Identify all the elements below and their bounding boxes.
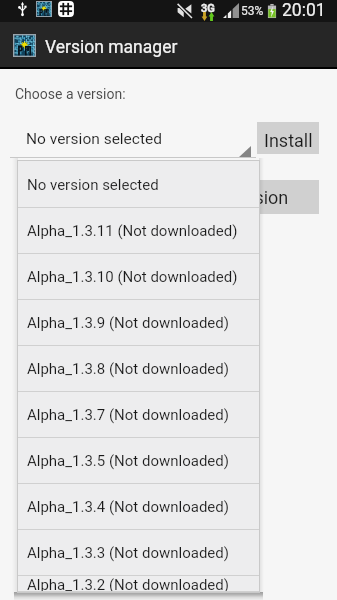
staticText: Alpha_1.3.2 (Not downloaded) bbox=[27, 576, 230, 592]
button[interactable]: Alpha_1.3.11 (Not downloaded) bbox=[18, 208, 259, 254]
button[interactable]: Alpha_1.3.3 (Not downloaded) bbox=[18, 530, 259, 576]
staticText: No version selected bbox=[27, 176, 159, 194]
staticText: Alpha_1.3.4 (Not downloaded) bbox=[27, 498, 230, 516]
staticText: Alpha_1.3.3 (Not downloaded) bbox=[27, 544, 230, 562]
staticText: No version selected bbox=[26, 130, 162, 148]
staticText: Install bbox=[264, 130, 313, 151]
staticText: Alpha_1.3.7 (Not downloaded) bbox=[27, 406, 230, 424]
staticText: Delete version bbox=[175, 187, 289, 208]
staticText: Version manager bbox=[45, 37, 178, 58]
staticText: Alpha_1.3.5 (Not downloaded) bbox=[27, 452, 230, 470]
button[interactable]: Alpha_1.3.8 (Not downloaded) bbox=[18, 346, 259, 392]
staticText: 53% bbox=[241, 4, 264, 18]
button[interactable]: No version selected bbox=[10, 113, 256, 158]
button[interactable]: Alpha_1.3.7 (Not downloaded) bbox=[18, 392, 259, 438]
button[interactable]: Alpha_1.3.10 (Not downloaded) bbox=[18, 254, 259, 300]
button[interactable]: Delete version bbox=[145, 180, 319, 214]
button[interactable]: Alpha_1.3.4 (Not downloaded) bbox=[18, 484, 259, 530]
staticText: Alpha_1.3.10 (Not downloaded) bbox=[27, 268, 238, 286]
button[interactable]: No version selected bbox=[18, 162, 259, 208]
button[interactable]: Alpha_1.3.5 (Not downloaded) bbox=[18, 438, 259, 484]
staticText: Alpha_1.3.9 (Not downloaded) bbox=[27, 314, 230, 332]
staticText: Choose a version: bbox=[15, 86, 126, 102]
button[interactable]: Alpha_1.3.9 (Not downloaded) bbox=[18, 300, 259, 346]
button[interactable]: Install bbox=[257, 122, 319, 154]
staticText: Alpha_1.3.11 (Not downloaded) bbox=[27, 222, 238, 240]
staticText: 3G bbox=[201, 2, 215, 15]
staticText: Alpha_1.3.8 (Not downloaded) bbox=[27, 360, 230, 378]
staticText: 20:01 bbox=[282, 0, 326, 21]
button[interactable]: Alpha_1.3.2 (Not downloaded) bbox=[18, 576, 259, 592]
